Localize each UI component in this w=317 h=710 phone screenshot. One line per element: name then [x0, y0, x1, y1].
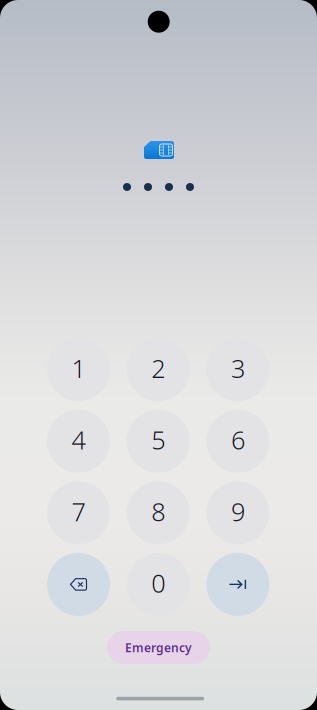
button[interactable]: 0 [127, 553, 190, 616]
staticText: 8 [151, 494, 165, 528]
staticText: 3 [231, 351, 245, 385]
button[interactable]: Emergency [107, 631, 210, 664]
staticText: Emergency [125, 639, 192, 655]
button[interactable]: 7 [47, 481, 110, 544]
button[interactable]: Enter [206, 553, 269, 616]
button[interactable]: 3 [206, 338, 269, 401]
button[interactable]: 4 [47, 410, 110, 473]
button[interactable]: 2 [127, 338, 190, 401]
button[interactable]: 1 [47, 338, 110, 401]
staticText: 4 [71, 423, 85, 456]
button[interactable]: 5 [127, 410, 190, 473]
staticText: 2 [151, 351, 165, 385]
button[interactable]: 6 [206, 410, 269, 473]
button[interactable]: 9 [206, 481, 269, 544]
button[interactable]: Delete [47, 553, 110, 616]
staticText: 7 [71, 494, 85, 528]
staticText: 1 [71, 351, 85, 385]
button[interactable]: 8 [127, 481, 190, 544]
staticText: 6 [231, 423, 245, 456]
staticText: 9 [231, 494, 245, 528]
staticText: 5 [151, 423, 165, 456]
staticText: 0 [151, 566, 165, 600]
